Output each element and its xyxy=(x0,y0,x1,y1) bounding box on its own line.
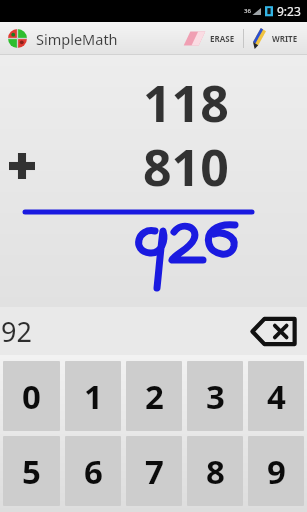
staticText: WRITE xyxy=(272,33,298,44)
staticText: 36 xyxy=(244,7,251,15)
button[interactable]: 8 xyxy=(187,436,243,506)
other: App icon xyxy=(8,29,27,48)
staticText: 6 xyxy=(84,449,103,494)
staticText: 92 xyxy=(1,313,32,350)
staticText: 0 xyxy=(22,374,41,419)
staticText: 9:23 xyxy=(277,3,301,19)
staticText: 9 xyxy=(267,449,286,494)
button[interactable]: 7 xyxy=(126,436,182,506)
button[interactable]: 5 xyxy=(3,436,60,506)
staticText: ERASE xyxy=(210,33,235,44)
staticText: 2 xyxy=(145,374,164,419)
staticText: 5 xyxy=(22,449,41,494)
staticText: 1 xyxy=(84,374,103,419)
button[interactable]: 4 xyxy=(248,361,304,431)
button[interactable]: 2 xyxy=(126,361,182,431)
staticText: 8 xyxy=(206,449,225,494)
button[interactable]: Backspace xyxy=(247,312,301,350)
staticText: 810 xyxy=(143,133,229,201)
button[interactable]: 0 xyxy=(3,361,60,431)
staticText: 3 xyxy=(206,374,225,419)
staticText: 118 xyxy=(143,69,229,137)
staticText: 7 xyxy=(145,449,164,494)
button[interactable]: 3 xyxy=(187,361,243,431)
button[interactable]: 1 xyxy=(65,361,121,431)
button[interactable]: WRITE xyxy=(251,22,300,55)
button[interactable]: 9 xyxy=(248,436,304,506)
button[interactable]: 6 xyxy=(65,436,121,506)
staticText: SimpleMath xyxy=(36,29,118,49)
button[interactable]: ERASE xyxy=(181,22,237,55)
staticText: 4 xyxy=(267,374,286,419)
